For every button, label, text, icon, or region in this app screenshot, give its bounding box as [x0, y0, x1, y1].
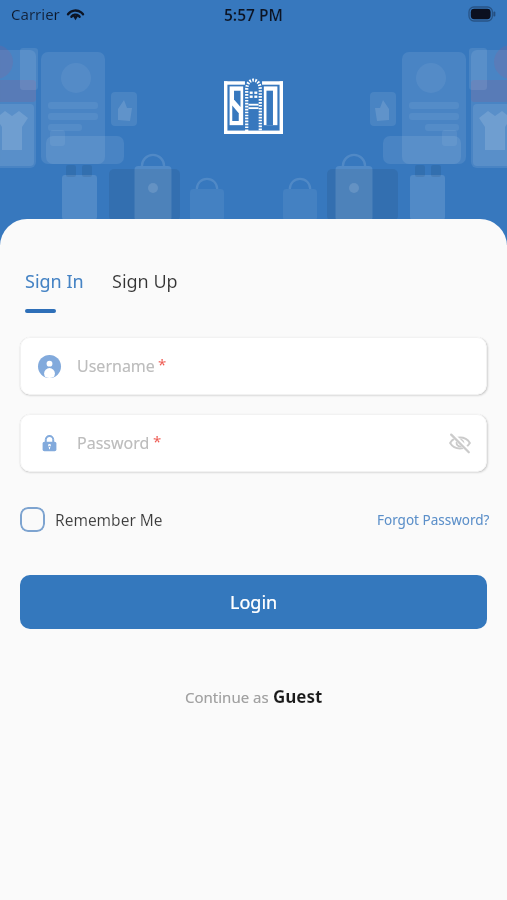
button[interactable]: Remember Me: [20, 507, 163, 532]
staticText: *: [158, 354, 167, 374]
staticText: Forgot Password?: [377, 511, 490, 529]
staticText: Guest: [273, 685, 323, 708]
staticText: Sign In: [25, 269, 84, 294]
staticText: 5:57 PM: [224, 4, 283, 25]
staticText: *: [153, 431, 162, 451]
staticText: Sign Up: [112, 269, 178, 294]
staticText: Continue as: [185, 687, 273, 707]
button[interactable]: Sign Up: [112, 269, 178, 294]
staticText: Username: [77, 355, 155, 377]
button[interactable]: Password: [20, 414, 487, 472]
button[interactable]: Continue as: [0, 685, 507, 708]
button[interactable]: Login: [20, 575, 487, 629]
button[interactable]: Sign In: [25, 269, 84, 294]
staticText: Login: [230, 590, 278, 615]
button[interactable]: Username: [20, 337, 487, 395]
staticText: Carrier: [11, 4, 60, 24]
button[interactable]: Forgot Password?: [377, 511, 490, 529]
staticText: Password: [77, 432, 150, 454]
staticText: Remember Me: [55, 509, 163, 530]
other: Show password: [449, 432, 471, 454]
